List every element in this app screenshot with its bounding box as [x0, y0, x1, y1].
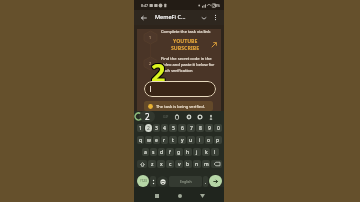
button[interactable]: e [153, 136, 160, 144]
staticText: 2 [151, 56, 166, 90]
button[interactable]: t [169, 136, 177, 144]
staticText: Complete the task via link [161, 29, 211, 35]
button[interactable]: 5 [169, 124, 177, 132]
staticText: English [180, 179, 192, 184]
button[interactable]: 1 [137, 124, 144, 132]
staticText: a [144, 149, 147, 156]
button[interactable]: 3 [153, 124, 160, 132]
staticText: 2 [151, 54, 166, 88]
button[interactable]: 7 [187, 124, 195, 132]
button[interactable]: Voice input [206, 112, 215, 121]
button[interactable]: Clipboard [172, 112, 181, 121]
staticText: m [204, 161, 209, 168]
staticText: q [139, 137, 143, 144]
button[interactable]: 6 [178, 124, 186, 132]
button[interactable]: g [175, 148, 183, 156]
staticText: n [195, 161, 199, 168]
staticText: GIF [163, 114, 169, 119]
staticText: h [186, 149, 190, 156]
button[interactable]: ?123 [137, 175, 149, 187]
staticText: 2 [152, 56, 167, 90]
staticText: 2 [150, 55, 165, 89]
button[interactable]: i [196, 136, 204, 144]
button[interactable]: Open link [210, 41, 218, 49]
staticText: 2 [147, 125, 150, 132]
button[interactable]: b [184, 160, 192, 168]
button[interactable]: Shift [137, 160, 147, 168]
button[interactable]: English [169, 176, 202, 187]
button[interactable]: s [150, 148, 157, 156]
button[interactable]: f [166, 148, 174, 156]
staticText: 4 [163, 125, 166, 132]
staticText: 0 [217, 125, 220, 132]
button[interactable]: Stickers [195, 112, 204, 121]
staticText: i [199, 137, 201, 144]
button[interactable]: y [178, 136, 186, 144]
staticText: y [181, 137, 184, 144]
staticText: v [178, 161, 181, 168]
button[interactable]: n [193, 160, 201, 168]
button[interactable]: l [211, 148, 219, 156]
button[interactable]: 2 [139, 111, 155, 122]
button[interactable]: h [184, 148, 192, 156]
button[interactable]: Settings [184, 112, 193, 121]
button[interactable]: Home [175, 191, 185, 201]
staticText: 2 [149, 61, 152, 66]
button[interactable]: The task is being verified. [144, 101, 213, 111]
staticText: Find the secret code in the [161, 56, 212, 62]
staticText: 9 [208, 125, 211, 132]
button[interactable]: x [157, 160, 165, 168]
button[interactable]: Symbols [150, 176, 156, 187]
button[interactable]: r [161, 136, 168, 144]
button[interactable]: Back [197, 191, 207, 201]
button[interactable]: d [158, 148, 165, 156]
staticText: p [216, 137, 220, 144]
button[interactable]: q [137, 136, 144, 144]
button[interactable]: v [175, 160, 183, 168]
button[interactable]: Emoji [157, 176, 168, 187]
button[interactable]: 8 [196, 124, 204, 132]
button[interactable]: k [202, 148, 210, 156]
button[interactable]: u [187, 136, 195, 144]
button[interactable]: 4 [161, 124, 168, 132]
button[interactable]: 0 [214, 124, 222, 132]
staticText: 2 [151, 55, 166, 89]
staticText: SUBSCRIBE [171, 44, 200, 51]
staticText: z [151, 161, 154, 168]
staticText: 8:47 [141, 3, 149, 8]
staticText: 1 [139, 125, 142, 132]
button[interactable]: z [148, 160, 156, 168]
staticText: t [172, 137, 174, 144]
staticText: r [163, 137, 166, 144]
button[interactable]: Recents [152, 191, 162, 201]
button[interactable]: Back [138, 12, 149, 23]
button[interactable]: Backspace [211, 160, 222, 168]
staticText: s [152, 149, 155, 156]
button[interactable]: More options [210, 12, 221, 23]
button[interactable]: Period [203, 176, 208, 187]
button[interactable]: Enter [209, 175, 222, 187]
staticText: b [186, 161, 190, 168]
button[interactable]: j [193, 148, 201, 156]
staticText: d [160, 149, 164, 156]
staticText: 3 [155, 125, 158, 132]
staticText: 8 [199, 125, 202, 132]
staticText: The task is being verified. [156, 104, 205, 110]
button[interactable]: p [214, 136, 222, 144]
button[interactable] [144, 81, 216, 97]
staticText: 2 [150, 56, 165, 90]
staticText: 1 [149, 35, 152, 40]
button[interactable]: 2 [145, 124, 152, 132]
staticText: k [205, 149, 208, 156]
button[interactable]: 9 [205, 124, 213, 132]
staticText: MemeFi C... [155, 13, 186, 21]
button[interactable]: o [205, 136, 213, 144]
button[interactable]: c [166, 160, 174, 168]
button[interactable]: w [145, 136, 152, 144]
button[interactable]: a [142, 148, 149, 156]
button[interactable]: m [202, 160, 210, 168]
staticText: f [169, 149, 171, 156]
staticText: . [205, 179, 207, 185]
button[interactable]: Expand [198, 12, 209, 23]
staticText: each verification [161, 68, 193, 74]
